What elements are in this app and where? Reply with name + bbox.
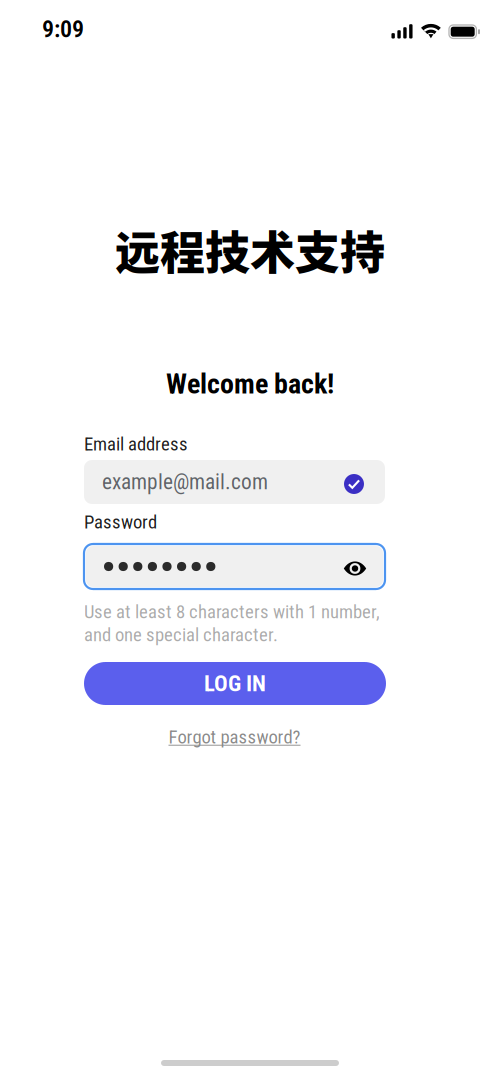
staticText: LOG IN — [204, 670, 266, 697]
button[interactable]: Forgot password? — [84, 727, 385, 747]
staticText: 9:09 — [42, 15, 84, 43]
staticText: Password — [84, 511, 157, 533]
staticText: 远程技术支持 — [115, 217, 385, 283]
staticText: Welcome back! — [166, 368, 334, 400]
button[interactable]: Show password — [342, 551, 368, 581]
staticText: Use at least 8 characters with 1 number,… — [84, 601, 380, 646]
staticText: example@mail.com — [102, 469, 268, 494]
staticText: Forgot password? — [168, 726, 300, 748]
button[interactable]: LOG IN — [84, 662, 386, 705]
staticText: Email address — [84, 433, 188, 455]
